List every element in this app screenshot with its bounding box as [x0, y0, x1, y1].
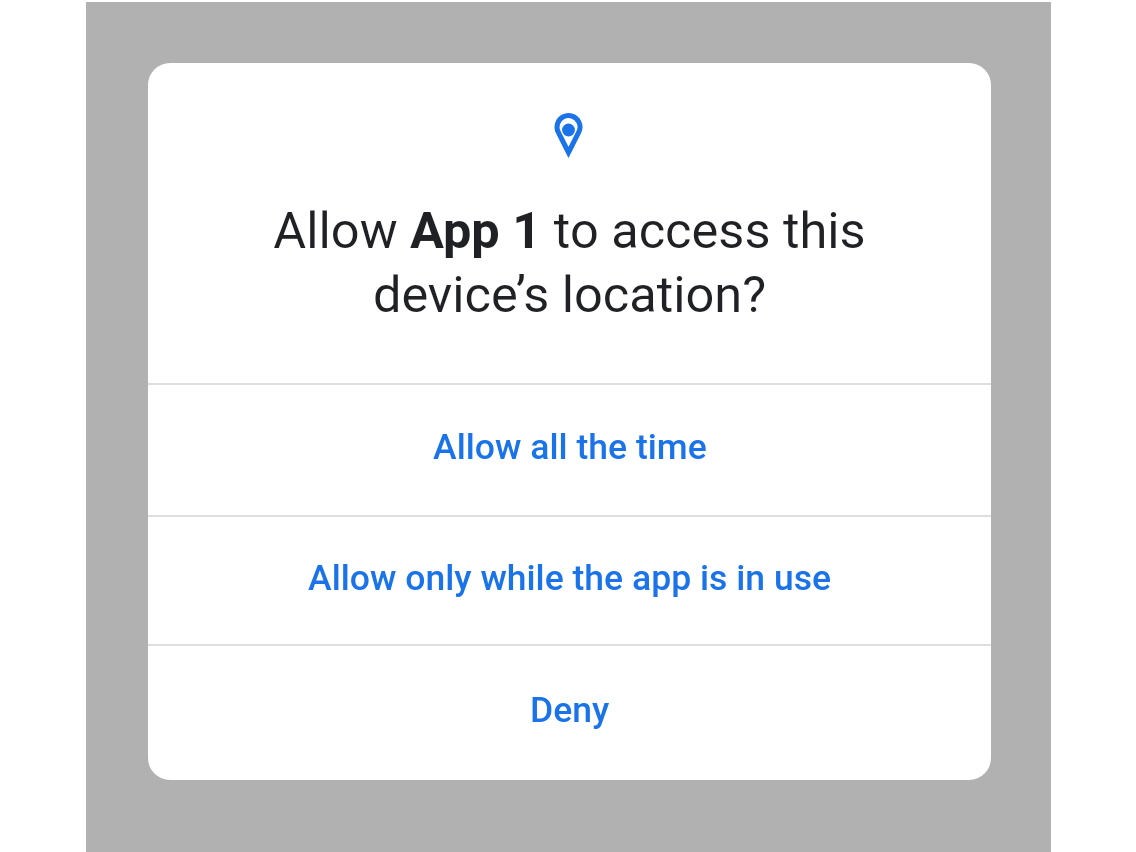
button[interactable]: Deny	[148, 646, 991, 780]
staticText: Allow App 1 to access this device’s loca…	[148, 201, 991, 324]
button[interactable]: Allow all the time	[148, 385, 991, 515]
button[interactable]: Allow only while the app is in use	[148, 517, 991, 644]
staticText: Allow only while the app is in use	[308, 557, 832, 599]
staticText: Allow all the time	[433, 426, 707, 468]
staticText: Deny	[530, 689, 610, 731]
